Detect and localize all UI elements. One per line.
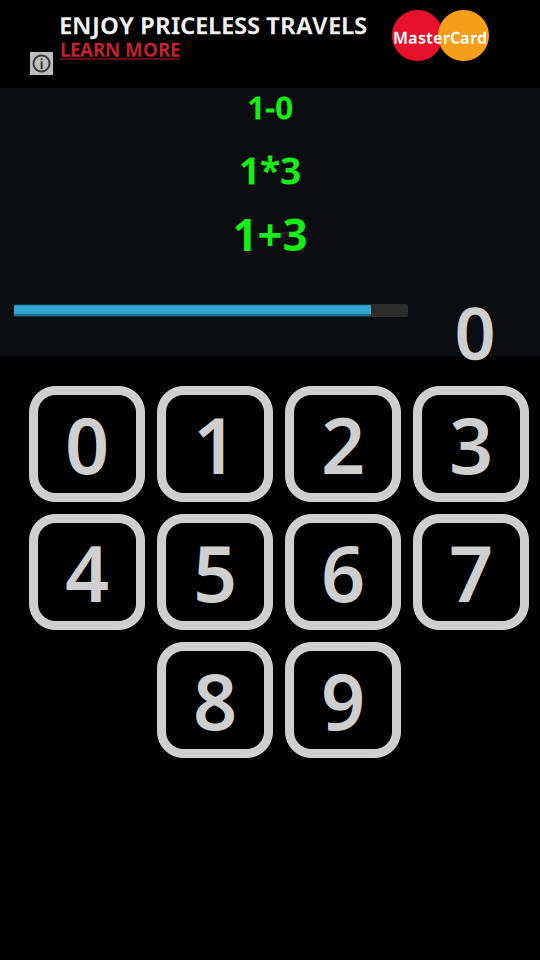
- staticText: 2: [321, 393, 365, 495]
- button[interactable]: 7: [413, 514, 529, 630]
- button[interactable]: 0: [29, 386, 145, 502]
- button[interactable]: 4: [29, 514, 145, 630]
- button[interactable]: About this ad: [30, 52, 53, 75]
- button[interactable]: 6: [285, 514, 401, 630]
- staticText: i: [39, 54, 43, 73]
- button[interactable]: 9: [285, 642, 401, 758]
- staticText: 0: [65, 393, 109, 495]
- button[interactable]: 3: [413, 386, 529, 502]
- staticText: 3: [449, 393, 493, 495]
- staticText: 6: [321, 521, 365, 623]
- button[interactable]: LEARN MORE: [60, 37, 180, 62]
- button[interactable]: 1: [157, 386, 273, 502]
- staticText: 9: [321, 649, 365, 751]
- staticText: MasterCard: [393, 27, 487, 48]
- staticText: 1+3: [232, 205, 307, 263]
- staticText: 4: [65, 521, 109, 623]
- button[interactable]: 8: [157, 642, 273, 758]
- staticText: LEARN MORE: [60, 37, 180, 62]
- staticText: 8: [193, 649, 237, 751]
- staticText: ENJOY PRICELESS TRAVELS: [59, 9, 367, 41]
- staticText: 7: [449, 521, 493, 623]
- staticText: 1: [193, 393, 237, 495]
- button[interactable]: 2: [285, 386, 401, 502]
- staticText: 0: [454, 284, 495, 380]
- staticText: 1*3: [239, 145, 301, 195]
- button[interactable]: 5: [157, 514, 273, 630]
- staticText: 1-0: [247, 86, 293, 128]
- staticText: 5: [193, 521, 237, 623]
